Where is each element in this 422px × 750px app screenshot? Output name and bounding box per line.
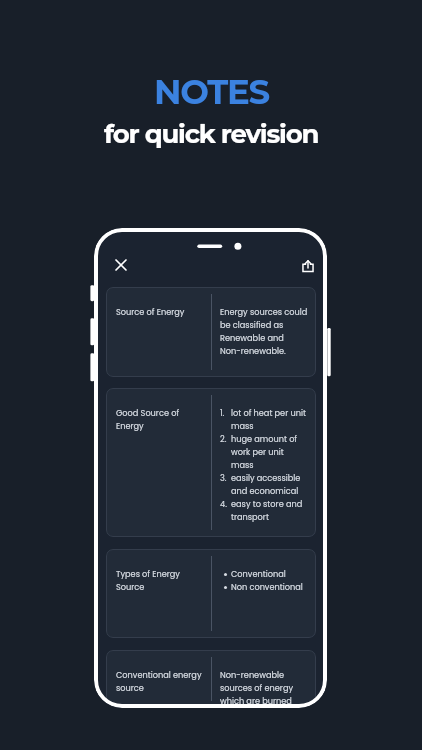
staticText: Energy sources could be classified as Re… bbox=[220, 306, 308, 358]
button[interactable]: Share bbox=[302, 260, 314, 272]
staticText: easily accessible and economical bbox=[231, 472, 301, 498]
staticText: 1. bbox=[220, 407, 231, 420]
staticText: easy to store and transport bbox=[231, 498, 303, 524]
staticText: Source of Energy bbox=[116, 306, 185, 319]
staticText: 4. bbox=[220, 498, 231, 511]
staticText: 3. bbox=[220, 472, 231, 485]
staticText: NOTES bbox=[154, 71, 269, 112]
staticText: for quick revision bbox=[104, 118, 319, 150]
staticText: Conventional energy source bbox=[116, 669, 202, 695]
button[interactable]: Close bbox=[115, 259, 127, 271]
staticText: 2. bbox=[220, 433, 231, 446]
staticText: Non conventional bbox=[231, 581, 303, 594]
staticText: Conventional bbox=[231, 568, 286, 581]
staticText: Types of Energy Source bbox=[116, 568, 180, 594]
staticText: lot of heat per unit mass bbox=[231, 407, 306, 433]
staticText: Non-renewable sources of energy which ar… bbox=[220, 669, 294, 708]
button[interactable]: Source of Energy bbox=[106, 287, 316, 377]
button[interactable]: Conventional energy source bbox=[106, 650, 316, 708]
button[interactable]: Types of Energy Source bbox=[106, 549, 316, 638]
staticText: Good Source of Energy bbox=[116, 407, 180, 433]
staticText: huge amount of work per unit mass bbox=[231, 433, 298, 472]
button[interactable]: Good Source of Energy bbox=[106, 388, 316, 537]
